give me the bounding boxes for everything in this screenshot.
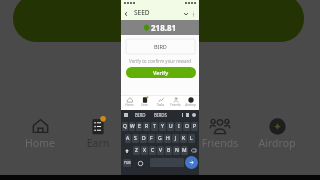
- button[interactable]: K: [180, 134, 187, 143]
- button[interactable]: L: [188, 134, 195, 143]
- button[interactable]: G: [156, 134, 163, 143]
- staticText: Tasks: [153, 103, 168, 107]
- staticText: E: [138, 123, 141, 130]
- button[interactable]: Back: [123, 11, 129, 17]
- staticText: Home: [9, 136, 71, 150]
- button[interactable]: Home: [122, 97, 137, 107]
- button[interactable]: U: [167, 122, 174, 131]
- button[interactable]: Q: [122, 122, 128, 131]
- button[interactable]: Friends: [168, 97, 183, 107]
- staticText: SEED: [134, 8, 150, 17]
- staticText: Friends: [168, 103, 183, 107]
- button[interactable]: Home: [9, 117, 71, 151]
- staticText: T: [153, 123, 156, 130]
- staticText: BIRD: [154, 43, 167, 50]
- button[interactable]: N: [173, 146, 180, 155]
- staticText: BIRDS: [154, 112, 168, 118]
- button[interactable]: Airdrop: [183, 97, 198, 107]
- staticText: Airdrop: [183, 103, 198, 107]
- other: Earn: [91, 118, 105, 135]
- button[interactable]: Earn: [67, 117, 129, 151]
- staticText: K: [182, 135, 186, 142]
- button[interactable]: R: [143, 122, 150, 131]
- button[interactable]: Symbols: [123, 159, 131, 167]
- staticText: BIRD: [135, 112, 146, 118]
- staticText: Home: [122, 103, 137, 107]
- staticText: H: [166, 135, 170, 142]
- button[interactable]: Z: [133, 146, 140, 155]
- staticText: ?123: [124, 161, 131, 165]
- button[interactable]: D: [140, 134, 147, 143]
- staticText: I: [178, 123, 180, 130]
- other: Friends: [210, 118, 230, 135]
- staticText: V: [159, 147, 163, 154]
- button[interactable]: X: [141, 146, 148, 155]
- button[interactable]: O: [183, 122, 190, 131]
- button[interactable]: M: [181, 146, 188, 155]
- button[interactable]: B: [165, 146, 172, 155]
- other: Home: [32, 118, 49, 134]
- button[interactable]: Tasks: [153, 97, 168, 107]
- button[interactable]: S: [132, 134, 139, 143]
- other: Airdrop: [269, 118, 286, 135]
- staticText: Z: [135, 147, 138, 154]
- staticText: X: [143, 147, 146, 154]
- staticText: Friends: [189, 136, 251, 150]
- staticText: B: [167, 147, 171, 154]
- staticText: Verify: [153, 69, 169, 76]
- staticText: Airdrop: [246, 136, 308, 150]
- button[interactable]: P: [191, 122, 198, 131]
- staticText: C: [151, 147, 155, 154]
- button[interactable]: T: [151, 122, 158, 131]
- staticText: S: [134, 135, 137, 142]
- staticText: N: [175, 147, 179, 154]
- button[interactable]: Shift: [122, 146, 132, 155]
- staticText: R: [145, 123, 149, 130]
- button[interactable]: H: [164, 134, 171, 143]
- staticText: Earn: [67, 136, 129, 150]
- button[interactable]: I: [175, 122, 182, 131]
- staticText: U: [169, 123, 173, 130]
- staticText: Verify to confirm your reward: [121, 58, 199, 64]
- staticText: Y: [161, 123, 164, 130]
- button[interactable]: Emoji: [137, 160, 143, 166]
- staticText: D: [142, 135, 146, 142]
- button[interactable]: W: [129, 122, 135, 131]
- staticText: A: [126, 135, 130, 142]
- staticText: Q: [123, 123, 127, 130]
- button[interactable]: Enter: [185, 156, 198, 169]
- button[interactable]: E: [136, 122, 142, 131]
- staticText: O: [185, 123, 189, 130]
- button[interactable]: A: [125, 134, 131, 143]
- button[interactable]: F: [148, 134, 155, 143]
- staticText: 218.81: [151, 22, 177, 33]
- button[interactable]: Airdrop: [246, 117, 308, 151]
- staticText: G: [158, 135, 162, 142]
- button[interactable]: Earn: [137, 97, 152, 107]
- staticText: M: [182, 147, 187, 154]
- button[interactable]: More options: [191, 12, 196, 17]
- staticText: J: [175, 135, 177, 142]
- button[interactable]: C: [149, 146, 156, 155]
- staticText: F: [150, 135, 153, 142]
- button[interactable]: Friends: [189, 117, 251, 151]
- staticText: Earn: [137, 103, 152, 107]
- button[interactable]: Backspace: [189, 146, 198, 155]
- button[interactable]: Verify: [126, 67, 196, 78]
- button[interactable]: J: [172, 134, 179, 143]
- staticText: L: [190, 135, 193, 142]
- button[interactable]: V: [157, 146, 164, 155]
- staticText: W: [130, 123, 135, 130]
- button[interactable]: Y: [159, 122, 166, 131]
- button[interactable]: Expand: [183, 11, 189, 17]
- staticText: P: [193, 123, 197, 130]
